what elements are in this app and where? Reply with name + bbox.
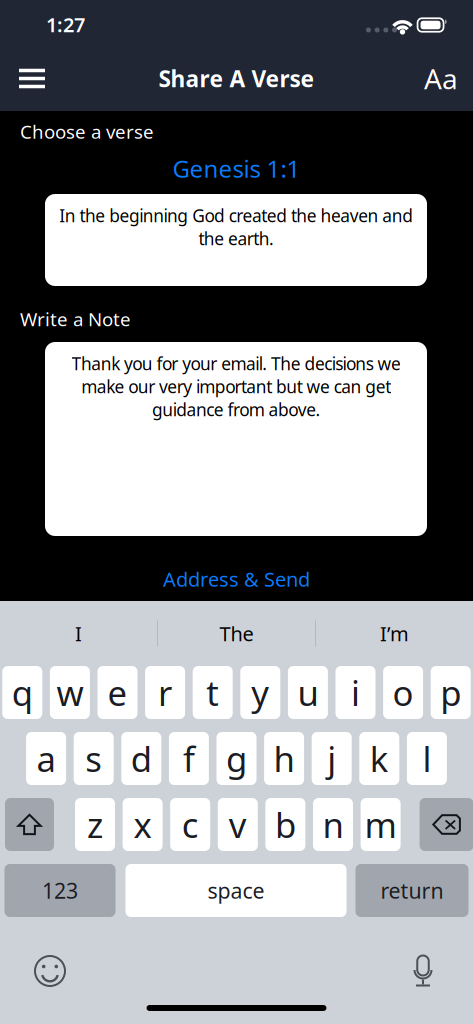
staticText: a [37, 735, 56, 781]
staticText: t [206, 669, 219, 715]
staticText: The [219, 620, 253, 647]
staticText: x [134, 801, 152, 847]
button[interactable]: Dictate [401, 949, 445, 993]
button[interactable]: Menu [8, 54, 56, 102]
staticText: z [87, 801, 103, 847]
staticText: Genesis 1:1 [172, 153, 300, 184]
button[interactable]: Genesis 1:1 [106, 151, 366, 185]
staticText: u [297, 669, 318, 715]
button[interactable]: u [288, 666, 328, 719]
button[interactable]: Text size [417, 54, 465, 102]
staticText: Address & Send [163, 566, 310, 592]
button[interactable]: Shift [5, 798, 54, 851]
button[interactable]: i [335, 666, 375, 719]
staticText: space [207, 876, 264, 905]
button[interactable]: I’m [316, 601, 473, 666]
button[interactable]: f [169, 732, 209, 785]
staticText: o [393, 669, 414, 715]
staticText: In the beginning God created the heaven … [59, 204, 413, 250]
button[interactable]: Emoji keyboard [28, 949, 72, 993]
button[interactable]: Address & Send [116, 562, 356, 596]
button[interactable]: Delete [420, 798, 473, 851]
button[interactable]: z [75, 798, 115, 851]
staticText: Choose a verse [20, 119, 154, 144]
button[interactable]: n [313, 798, 353, 851]
button[interactable]: y [240, 666, 280, 719]
staticText: j [327, 735, 336, 781]
staticText: w [56, 669, 83, 715]
button[interactable]: s [74, 732, 114, 785]
button[interactable]: j [312, 732, 352, 785]
button[interactable]: t [193, 666, 233, 719]
button[interactable]: space [125, 864, 346, 917]
staticText: 123 [42, 876, 78, 905]
staticText: Write a Note [20, 307, 131, 331]
button[interactable]: h [264, 732, 304, 785]
staticText: r [158, 669, 172, 715]
button[interactable]: o [383, 666, 423, 719]
staticText: Share A Verse [158, 63, 314, 93]
button[interactable]: I [0, 601, 157, 666]
staticText: y [251, 669, 269, 715]
staticText: v [229, 801, 247, 847]
staticText: s [85, 735, 102, 781]
staticText: c [182, 801, 199, 847]
staticText: m [365, 801, 397, 847]
staticText: b [275, 801, 296, 847]
button[interactable]: w [50, 666, 90, 719]
staticText: i [351, 669, 360, 715]
button[interactable]: v [218, 798, 258, 851]
staticText: k [370, 735, 389, 781]
staticText: n [322, 801, 343, 847]
staticText: I [75, 620, 82, 647]
button[interactable]: q [2, 666, 42, 719]
button[interactable]: a [26, 732, 66, 785]
button[interactable]: l [407, 732, 447, 785]
button[interactable]: k [359, 732, 399, 785]
button[interactable]: The [158, 601, 315, 666]
staticText: f [183, 735, 195, 781]
staticText: d [131, 735, 152, 781]
button[interactable]: r [145, 666, 185, 719]
staticText: l [422, 735, 431, 781]
staticText: I’m [380, 620, 409, 647]
button[interactable]: d [121, 732, 161, 785]
staticText: 1:27 [46, 11, 85, 38]
staticText: h [274, 735, 295, 781]
button[interactable]: m [361, 798, 401, 851]
staticText: e [107, 669, 127, 715]
staticText: g [226, 735, 247, 781]
button[interactable]: g [216, 732, 256, 785]
button[interactable]: x [123, 798, 163, 851]
staticText: return [380, 876, 443, 905]
button[interactable]: p [431, 666, 471, 719]
button[interactable]: 123 [4, 864, 115, 917]
staticText: Aa [424, 60, 458, 97]
staticText: q [12, 669, 33, 715]
staticText: p [440, 669, 461, 715]
button[interactable]: return [355, 864, 468, 917]
button[interactable]: b [265, 798, 305, 851]
staticText: Thank you for your email. The decisions … [71, 352, 401, 421]
button[interactable]: c [170, 798, 210, 851]
button[interactable]: e [97, 666, 137, 719]
